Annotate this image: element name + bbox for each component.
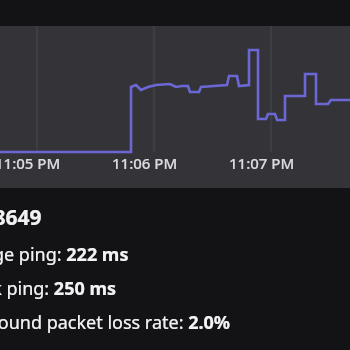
staticText: 11:06 PM <box>112 153 178 173</box>
staticText: Average ping: 222 ms <box>0 242 295 267</box>
staticText: Ping to 8649 <box>0 203 42 232</box>
staticText: Peak ping: 250 ms <box>0 276 311 301</box>
staticText: Outbound packet loss rate: 2.0% <box>0 310 305 335</box>
button[interactable]: Ping latency chart <box>0 26 350 188</box>
button[interactable]: Ping to 8649 <box>0 203 350 335</box>
staticText: 11:05 PM <box>0 153 61 173</box>
staticText: 11:07 PM <box>229 153 295 173</box>
